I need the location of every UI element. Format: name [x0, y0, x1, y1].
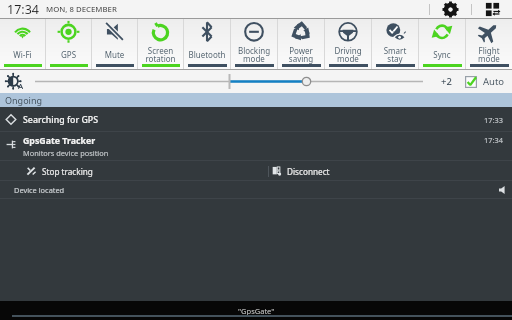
staticText: Smart stay — [372, 45, 418, 64]
staticText: Bluetooth — [184, 49, 230, 60]
button[interactable]: Edit quick settings — [485, 2, 500, 17]
staticText: Wi-Fi — [0, 49, 45, 60]
button[interactable]: Driving mode — [325, 19, 371, 70]
button[interactable]: Settings — [442, 1, 459, 18]
staticText: 17:34 — [7, 1, 39, 18]
staticText: Monitors device position — [23, 148, 109, 158]
staticText: Sync — [419, 49, 465, 60]
staticText: Device located — [14, 185, 65, 195]
button[interactable]: Sync — [419, 19, 465, 70]
staticText: Searching for GPS — [23, 114, 99, 126]
staticText: Flight mode — [466, 45, 512, 64]
button[interactable]: Power saving — [278, 19, 324, 70]
button[interactable]: Stop tracking — [0, 161, 256, 181]
staticText: 17:33 — [484, 115, 503, 125]
staticText: Disconnect — [287, 166, 330, 177]
button[interactable]: Device located — [0, 181, 512, 199]
staticText: Blocking mode — [231, 45, 277, 64]
staticText: +2 — [441, 75, 452, 88]
button[interactable]: Brightness slider — [0, 70, 512, 93]
button[interactable]: Flight mode — [466, 19, 512, 70]
button[interactable]: Screen rotation — [138, 19, 183, 70]
button[interactable]: Smart stay — [372, 19, 418, 70]
staticText: GpsGate Tracker — [23, 135, 96, 147]
button[interactable]: GpsGate Tracker — [0, 132, 512, 161]
button[interactable]: Blocking mode — [231, 19, 277, 70]
staticText: 17:34 — [484, 135, 503, 145]
button[interactable]: Searching for GPS — [0, 107, 512, 132]
staticText: Driving mode — [325, 45, 371, 64]
staticText: MON, 8 DECEMBER — [46, 4, 117, 15]
staticText: Auto — [483, 75, 505, 88]
button[interactable]: Mute — [92, 19, 137, 70]
button[interactable]: Bluetooth — [184, 19, 230, 70]
staticText: GPS — [46, 49, 91, 60]
button[interactable]: Auto brightness — [465, 76, 477, 88]
staticText: Screen rotation — [138, 45, 183, 64]
staticText: Power saving — [278, 45, 324, 64]
button[interactable]: Disconnect — [256, 161, 512, 181]
staticText: "GpsGate" — [238, 306, 275, 316]
button[interactable]: Wi-Fi — [0, 19, 45, 70]
button[interactable]: GPS — [46, 19, 91, 70]
staticText: Stop tracking — [42, 166, 93, 177]
staticText: Mute — [92, 49, 137, 60]
staticText: Ongoing — [5, 94, 42, 106]
button[interactable]: Brightness — [6, 73, 24, 91]
